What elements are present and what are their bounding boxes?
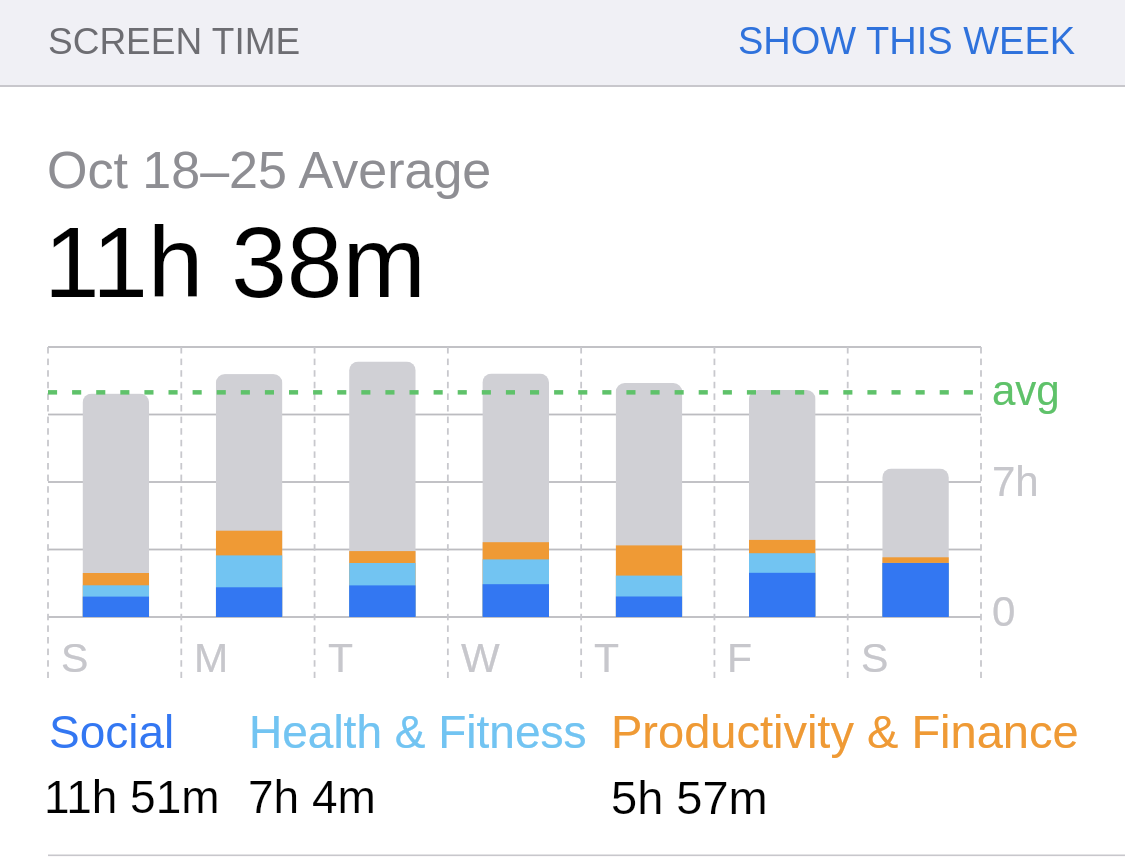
staticText: F bbox=[727, 635, 753, 681]
button[interactable]: T screen time bbox=[315, 347, 448, 617]
button[interactable]: F screen time bbox=[714, 347, 847, 617]
button[interactable]: SHOW THIS WEEK bbox=[787, 0, 1125, 85]
staticText: W bbox=[461, 635, 500, 681]
staticText: Health & Fitness bbox=[249, 706, 587, 757]
staticText: T bbox=[594, 635, 620, 681]
staticText: 11h 51m bbox=[44, 771, 220, 822]
button[interactable]: Social bbox=[49, 706, 225, 757]
button[interactable]: S screen time bbox=[848, 347, 981, 617]
staticText: Productivity & Finance bbox=[611, 705, 1079, 758]
button[interactable]: S screen time bbox=[48, 347, 181, 617]
staticText: Oct 18–25 Average bbox=[47, 141, 492, 199]
staticText: 7h bbox=[992, 458, 1039, 505]
button[interactable]: Productivity & Finance bbox=[611, 705, 1079, 758]
button[interactable]: T screen time bbox=[581, 347, 714, 617]
button[interactable]: Health & Fitness bbox=[249, 706, 587, 757]
staticText: avg bbox=[992, 367, 1060, 414]
staticText: SHOW THIS WEEK bbox=[738, 20, 1076, 62]
staticText: 7h 4m bbox=[248, 771, 376, 822]
staticText: 5h 57m bbox=[611, 771, 768, 824]
button[interactable]: M screen time bbox=[181, 347, 314, 617]
staticText: S bbox=[61, 635, 89, 681]
staticText: T bbox=[328, 635, 354, 681]
button[interactable]: W screen time bbox=[448, 347, 581, 617]
staticText: S bbox=[861, 635, 889, 681]
staticText: SCREEN TIME bbox=[48, 21, 301, 62]
staticText: 11h 38m bbox=[44, 206, 426, 318]
button[interactable]: SCREEN TIME bbox=[0, 0, 787, 85]
staticText: Social bbox=[49, 706, 175, 757]
staticText: 0 bbox=[992, 588, 1016, 635]
staticText: M bbox=[194, 635, 229, 681]
